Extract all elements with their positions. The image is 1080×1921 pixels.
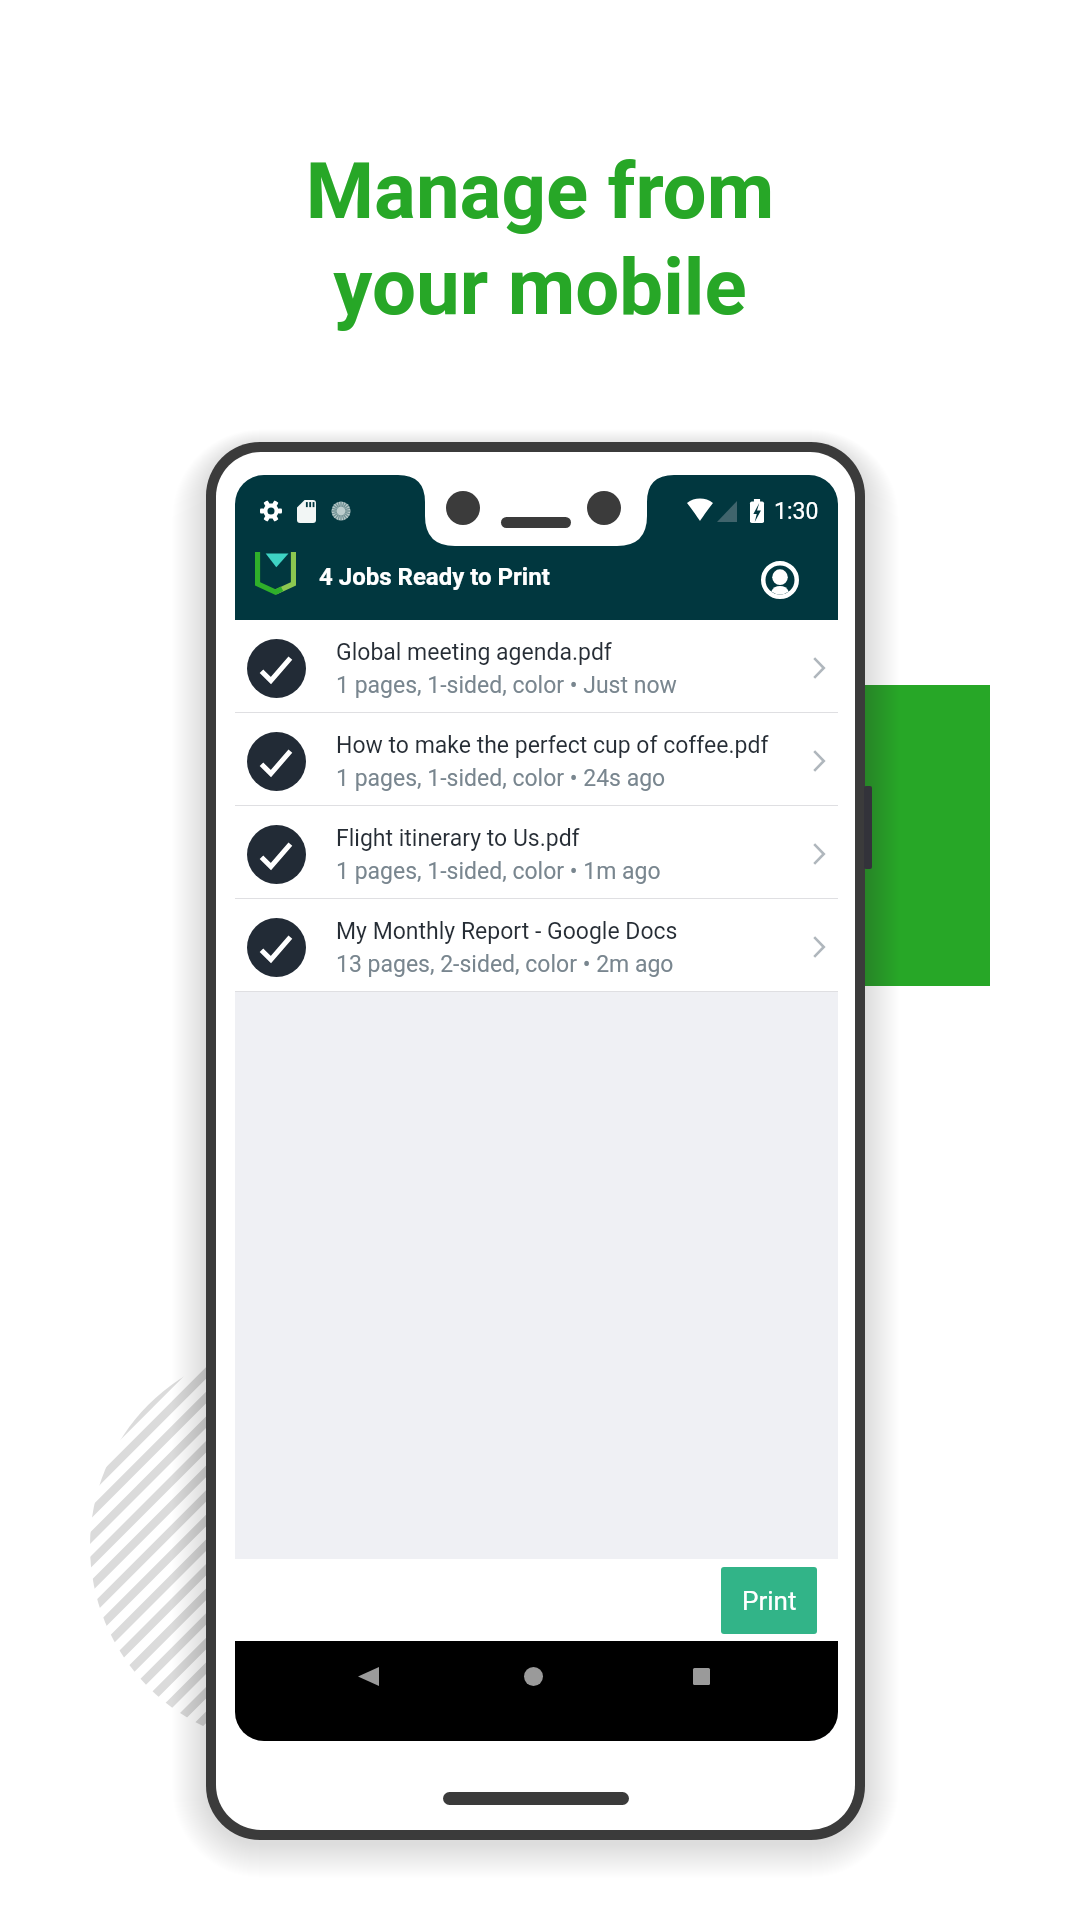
staticText: Print — [742, 1586, 797, 1616]
staticText: My Monthly Report - Google Docs — [336, 918, 816, 945]
staticText: 1 pages, 1-sided, color • 1m ago — [336, 858, 816, 885]
staticText: Manage from your mobile — [0, 146, 1080, 333]
button[interactable]: How to make the perfect cup of coffee.pd… — [235, 713, 838, 806]
staticText: 1 pages, 1-sided, color • 24s ago — [336, 765, 816, 792]
button[interactable]: Flight itinerary to Us.pdf — [235, 806, 838, 899]
staticText: 13 pages, 2-sided, color • 2m ago — [336, 951, 816, 978]
button[interactable]: Global meeting agenda.pdf — [235, 620, 838, 713]
staticText: 4 Jobs Ready to Print — [319, 563, 550, 591]
button[interactable]: Account — [756, 556, 804, 604]
staticText: Flight itinerary to Us.pdf — [336, 825, 816, 852]
staticText: Global meeting agenda.pdf — [336, 639, 816, 666]
staticText: How to make the perfect cup of coffee.pd… — [336, 732, 816, 759]
button[interactable]: Home — [511, 1653, 556, 1700]
staticText: 1:30 — [774, 498, 819, 525]
button[interactable]: My Monthly Report - Google Docs — [235, 899, 838, 992]
button[interactable]: Print — [721, 1567, 817, 1634]
staticText: 1 pages, 1-sided, color • Just now — [336, 672, 816, 699]
button[interactable]: Recents — [679, 1653, 724, 1700]
button[interactable]: Back — [346, 1653, 391, 1700]
